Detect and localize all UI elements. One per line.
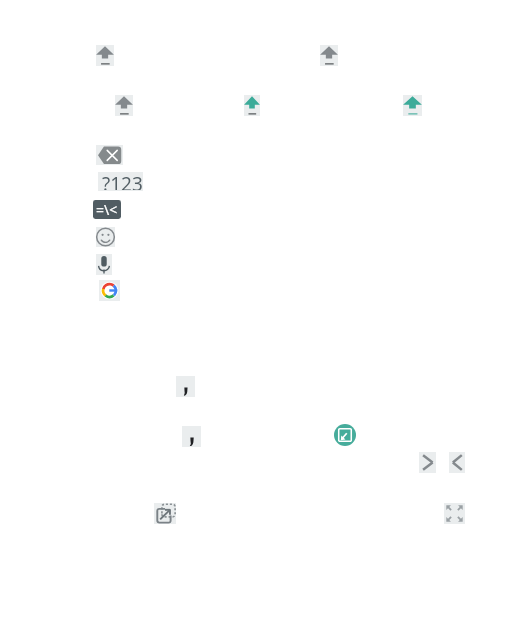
button[interactable]: Previous [449,452,465,473]
button[interactable]: Comma [182,426,201,447]
button[interactable]: Shift [320,45,338,66]
staticText: =\< [96,200,118,219]
button[interactable]: Emoji [96,227,115,247]
button[interactable]: Enter [334,424,356,446]
button[interactable]: =\< [93,200,121,219]
button[interactable]: Resize [444,503,465,524]
button[interactable]: Next [419,452,436,473]
button[interactable]: Caps lock [403,95,422,116]
button[interactable]: Caps lock [244,95,260,116]
button[interactable]: Shift [115,95,133,116]
button[interactable]: Shift [96,45,114,66]
button[interactable]: ?123 [98,172,143,191]
staticText: ?123 [102,171,143,190]
button[interactable]: Floating keyboard [154,503,176,524]
button[interactable]: Voice input [96,254,112,275]
button[interactable]: Delete [96,145,123,165]
button[interactable]: Google [99,280,120,301]
button[interactable]: Comma [176,376,195,397]
